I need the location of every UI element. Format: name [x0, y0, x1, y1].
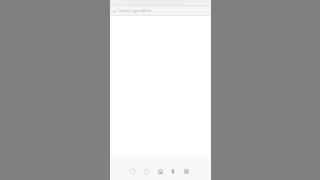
button[interactable]: Site information — [110, 7, 211, 15]
button[interactable]: Menu — [180, 164, 193, 179]
button[interactable]: Home — [154, 164, 167, 179]
staticText: Search or type address — [118, 9, 152, 13]
button[interactable]: Tab switcher — [166, 164, 179, 179]
button[interactable]: Back — [126, 164, 139, 179]
other: Site information — [113, 10, 116, 13]
button[interactable]: Forward — [140, 164, 153, 179]
